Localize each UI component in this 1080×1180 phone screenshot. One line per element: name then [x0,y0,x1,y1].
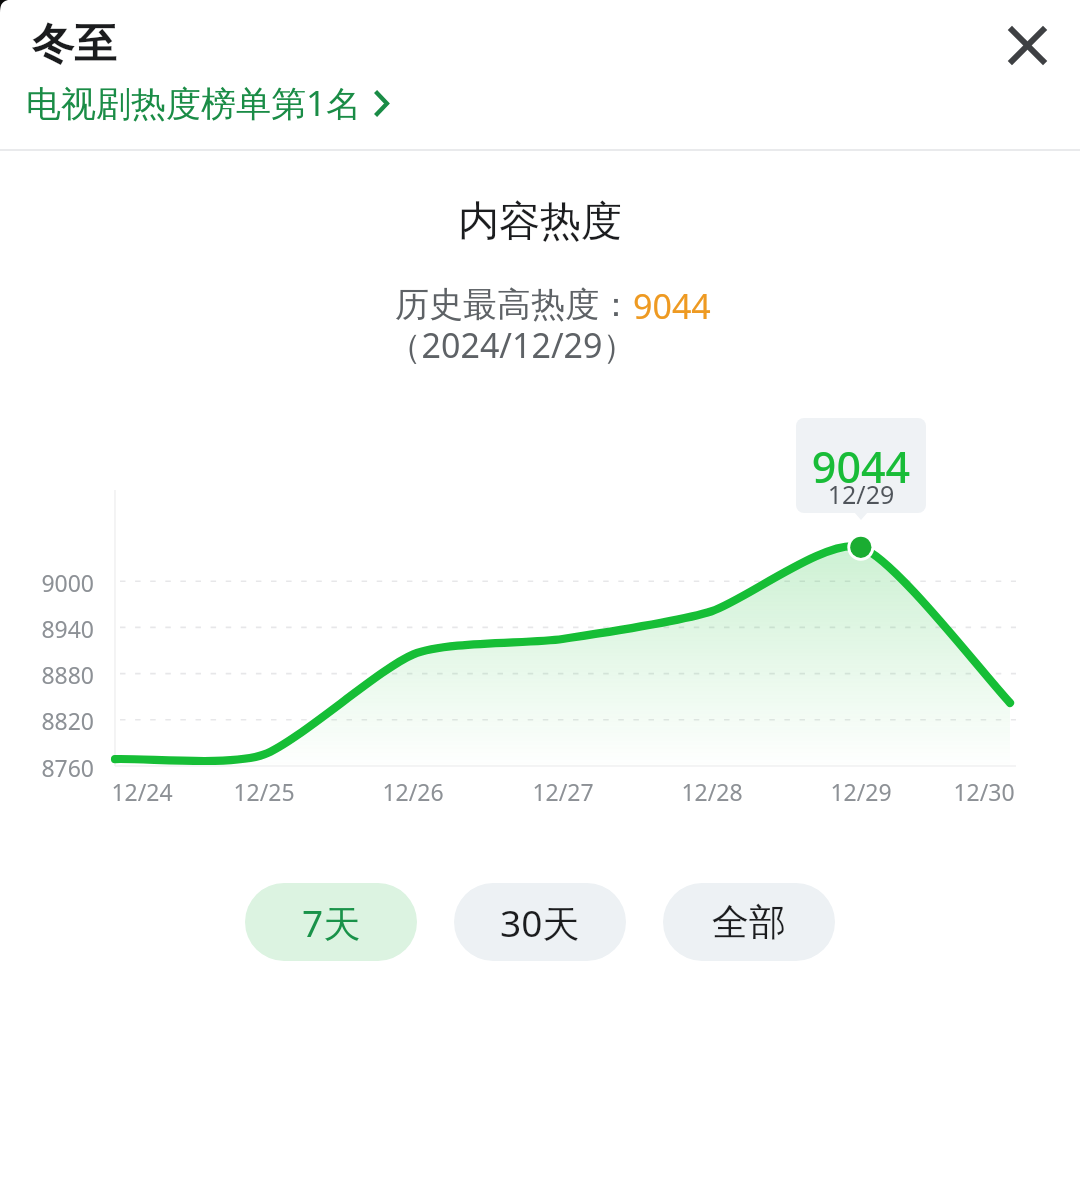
staticText: 12/24 [72,776,212,807]
button[interactable]: 7天 [245,883,417,961]
button[interactable]: 电视剧热度榜单第1名 [26,79,389,127]
staticText: 7天 [302,897,361,948]
staticText: 电视剧热度榜单第1名 [26,79,362,127]
staticText: 9000 [0,567,94,598]
button[interactable]: 全部 [663,883,835,961]
staticText: 12/27 [493,776,633,807]
staticText: 12/28 [642,776,782,807]
staticText: 12/29 [791,776,931,807]
staticText: 历史最高热度： [395,283,633,326]
staticText: 8940 [0,613,94,644]
button[interactable]: Close [991,9,1063,81]
staticText: 内容热度 [0,196,1080,248]
staticText: 8820 [0,705,94,736]
staticText: 12/30 [914,776,1054,807]
staticText: 全部 [712,899,786,946]
staticText: 冬至 [32,18,116,71]
staticText: 8760 [0,752,94,783]
staticText: 9044 [633,283,711,329]
staticText: 9044 [796,437,926,496]
button[interactable]: 30天 [454,883,626,961]
staticText: 12/29 [796,477,926,511]
staticText: 12/26 [343,776,483,807]
staticText: 30天 [500,897,580,948]
staticText: 8880 [0,659,94,690]
staticText: （2024/12/29） [0,322,1052,368]
staticText: 12/25 [194,776,334,807]
